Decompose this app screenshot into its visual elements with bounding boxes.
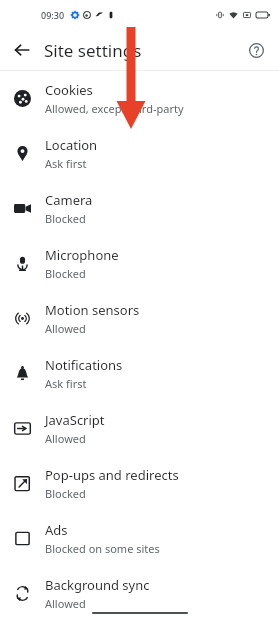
staticText: Blocked	[45, 486, 86, 501]
staticText: Cookies	[45, 81, 93, 99]
staticText: Ads	[45, 521, 68, 539]
button[interactable]: Notifications	[0, 346, 279, 401]
button[interactable]: Cookies	[0, 71, 279, 126]
staticText: Location	[45, 136, 98, 154]
staticText: Blocked on some sites	[45, 541, 160, 556]
button[interactable]: Location	[0, 126, 279, 181]
button[interactable]: Pop-ups and redirects	[0, 456, 279, 511]
staticText: Background sync	[45, 576, 150, 594]
staticText: Ask first	[45, 376, 87, 391]
staticText: Allowed	[45, 596, 86, 611]
staticText: Site settings	[44, 39, 142, 62]
staticText: Allowed	[45, 321, 86, 336]
button[interactable]: Background sync	[0, 566, 279, 620]
staticText: Motion sensors	[45, 301, 140, 319]
button[interactable]: JavaScript	[0, 401, 279, 456]
staticText: Ask first	[45, 156, 87, 171]
staticText: Microphone	[45, 246, 119, 264]
staticText: Allowed	[45, 431, 86, 446]
staticText: Allowed, except third-party	[45, 101, 184, 116]
staticText: Pop-ups and redirects	[45, 466, 179, 484]
button[interactable]: Help	[242, 36, 270, 64]
staticText: JavaScript	[45, 411, 105, 429]
button[interactable]: Camera	[0, 181, 279, 236]
staticText: Blocked	[45, 211, 86, 226]
staticText: Notifications	[45, 356, 123, 374]
button[interactable]: Ads	[0, 511, 279, 566]
staticText: 09:30	[41, 9, 65, 21]
button[interactable]: Motion sensors	[0, 291, 279, 346]
button[interactable]: Microphone	[0, 236, 279, 291]
staticText: Camera	[45, 191, 93, 209]
staticText: Blocked	[45, 266, 86, 281]
button[interactable]: Back	[8, 36, 36, 64]
